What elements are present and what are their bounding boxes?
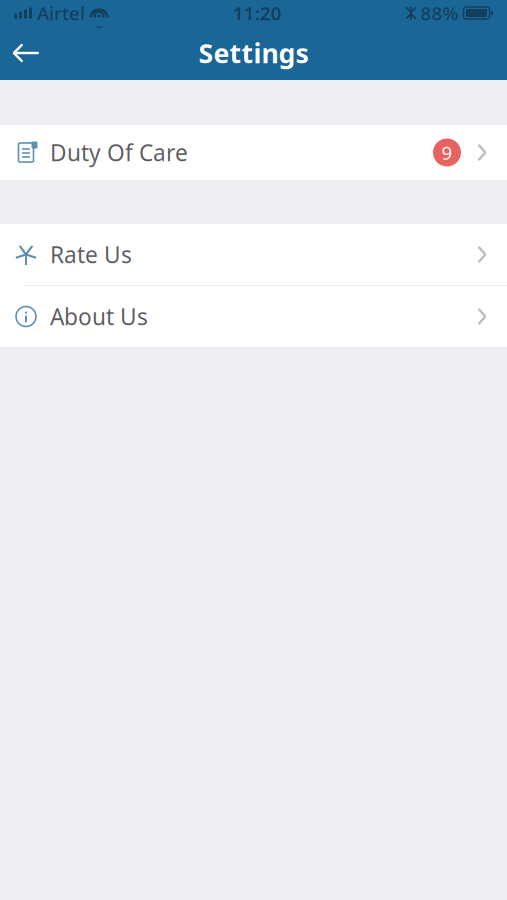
button[interactable]: Duty Of Care [0, 125, 507, 180]
button[interactable]: Back [0, 27, 52, 79]
button[interactable]: Rate Us [0, 224, 507, 285]
staticText: Duty Of Care [50, 137, 188, 167]
staticText: Settings [198, 35, 308, 71]
staticText: 88% [420, 1, 458, 25]
staticText: 9 [441, 140, 452, 165]
staticText: Airtel [37, 1, 85, 25]
button[interactable]: About Us [0, 286, 507, 347]
staticText: About Us [50, 301, 148, 331]
staticText: Rate Us [50, 239, 132, 269]
staticText: 11:20 [233, 1, 282, 25]
